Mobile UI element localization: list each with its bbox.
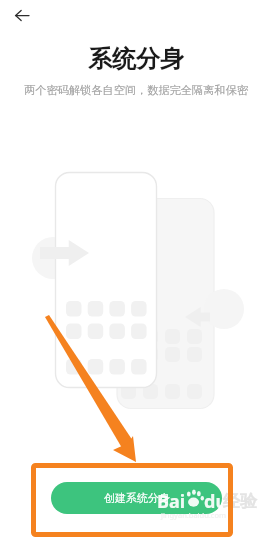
staticText: 系统分身	[88, 44, 184, 74]
staticText: 两个密码解锁各自空间，数据完全隔离和保密	[24, 83, 248, 97]
staticText: jingyan.baidu.com	[161, 510, 226, 520]
button[interactable]: Back	[7, 0, 37, 30]
button[interactable]: 创建系统分身	[51, 482, 222, 514]
staticText: du	[204, 489, 228, 514]
staticText: Bai	[157, 489, 186, 514]
staticText: 创建系统分身	[104, 491, 170, 505]
staticText: 经验	[223, 491, 257, 512]
